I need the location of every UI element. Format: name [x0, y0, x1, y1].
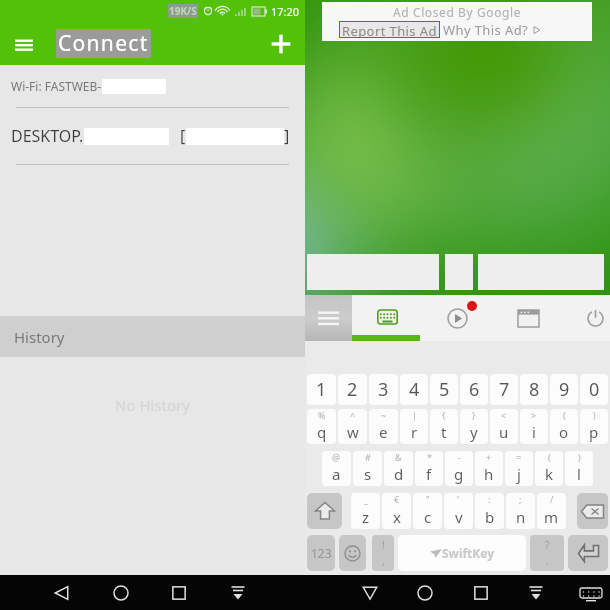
- button[interactable]: {: [430, 409, 458, 444]
- button[interactable]: ?: [530, 535, 564, 571]
- button[interactable]: Hide keyboard: [522, 579, 550, 607]
- staticText: Wi-Fi: FASTWEB-: [11, 78, 102, 94]
- staticText: x: [393, 507, 401, 527]
- button[interactable]: *: [415, 451, 443, 486]
- button[interactable]: !: [372, 535, 394, 571]
- staticText: No History: [115, 395, 190, 415]
- button[interactable]: Play: [432, 295, 482, 341]
- button[interactable]: Why This Ad?: [443, 21, 529, 38]
- button[interactable]: +: [475, 451, 503, 486]
- button[interactable]: 3: [369, 374, 398, 405]
- staticText: y: [470, 422, 478, 442]
- button[interactable]: DESKTOP.: [0, 108, 305, 164]
- button[interactable]: Home: [107, 579, 135, 607]
- button[interactable]: ': [444, 493, 473, 529]
- staticText: &: [395, 451, 402, 463]
- staticText: 2: [347, 377, 358, 402]
- staticText: Ad Closed By Google: [393, 4, 522, 20]
- button[interactable]: 6: [460, 374, 488, 405]
- staticText: i: [532, 422, 536, 442]
- button[interactable]: SwiftKey: [398, 535, 526, 571]
- button[interactable]: &: [384, 451, 413, 486]
- staticText: Report This Ad: [342, 22, 437, 37]
- button[interactable]: /: [537, 493, 566, 529]
- staticText: g: [454, 464, 464, 484]
- button[interactable]: Switch keyboard: [577, 579, 605, 607]
- button[interactable]: Browser: [503, 295, 553, 341]
- button[interactable]: 5: [430, 374, 458, 405]
- staticText: b: [485, 507, 495, 527]
- button[interactable]: =: [505, 451, 533, 486]
- staticText: >: [531, 409, 537, 421]
- button[interactable]: ;: [506, 493, 535, 529]
- staticText: <: [501, 409, 507, 421]
- button[interactable]: (: [535, 451, 563, 486]
- staticText: o: [559, 422, 569, 442]
- button[interactable]: Hide keyboard: [224, 579, 252, 607]
- staticText: w: [347, 422, 359, 442]
- staticText: .: [546, 554, 549, 568]
- staticText: SwiftKey: [442, 545, 495, 561]
- button[interactable]: ): [565, 451, 593, 486]
- button[interactable]: Back: [48, 579, 76, 607]
- staticText: f: [426, 464, 432, 484]
- button[interactable]: ^: [338, 409, 367, 444]
- staticText: Connect: [58, 29, 149, 58]
- button[interactable]: Backspace: [577, 493, 608, 529]
- button[interactable]: Power: [573, 295, 610, 341]
- button[interactable]: Back: [356, 579, 384, 607]
- button[interactable]: Emoji: [339, 535, 366, 571]
- button[interactable]: 123: [307, 535, 335, 571]
- staticText: p: [589, 422, 599, 442]
- staticText: 1: [316, 377, 327, 402]
- button[interactable]: #: [353, 451, 382, 486]
- staticText: 17:20: [271, 4, 300, 19]
- staticText: m: [544, 507, 559, 527]
- button[interactable]: Enter: [568, 535, 608, 571]
- button[interactable]: Report This Ad: [340, 22, 439, 37]
- staticText: l: [577, 464, 581, 484]
- button[interactable]: ): [580, 409, 608, 444]
- button[interactable]: 4: [400, 374, 428, 405]
- staticText: DESKTOP.: [11, 125, 84, 147]
- button[interactable]: €: [382, 493, 411, 529]
- button[interactable]: %: [307, 409, 336, 444]
- button[interactable]: 2: [338, 374, 367, 405]
- button[interactable]: ~: [369, 409, 398, 444]
- button[interactable]: Keyboard: [352, 295, 422, 341]
- button[interactable]: Recents: [165, 579, 193, 607]
- button[interactable]: Menu: [8, 28, 40, 60]
- button[interactable]: 7: [490, 374, 518, 405]
- staticText: ]: [284, 125, 290, 147]
- button[interactable]: Menu: [305, 295, 352, 341]
- button[interactable]: 1: [307, 374, 336, 405]
- button[interactable]: Home: [411, 579, 439, 607]
- button[interactable]: @: [322, 451, 351, 486]
- button[interactable]: (: [550, 409, 578, 444]
- button[interactable]: }: [460, 409, 488, 444]
- staticText: d: [394, 464, 404, 484]
- staticText: s: [364, 464, 372, 484]
- button[interactable]: -: [445, 451, 473, 486]
- button[interactable]: _: [351, 493, 380, 529]
- button[interactable]: Recents: [467, 579, 495, 607]
- button[interactable]: <: [490, 409, 518, 444]
- staticText: €: [394, 493, 400, 505]
- staticText: k: [545, 464, 554, 484]
- staticText: @: [332, 451, 341, 463]
- button[interactable]: Add: [263, 26, 299, 62]
- button[interactable]: ": [413, 493, 442, 529]
- button[interactable]: 8: [520, 374, 548, 405]
- button[interactable]: Wi-Fi: FASTWEB-: [0, 65, 305, 107]
- button[interactable]: 9: [550, 374, 578, 405]
- button[interactable]: 0: [580, 374, 608, 405]
- button[interactable]: >: [520, 409, 548, 444]
- staticText: h: [484, 464, 494, 484]
- staticText: History: [14, 327, 65, 347]
- button[interactable]: |: [400, 409, 428, 444]
- button[interactable]: Shift: [307, 493, 342, 529]
- button[interactable]: :: [475, 493, 504, 529]
